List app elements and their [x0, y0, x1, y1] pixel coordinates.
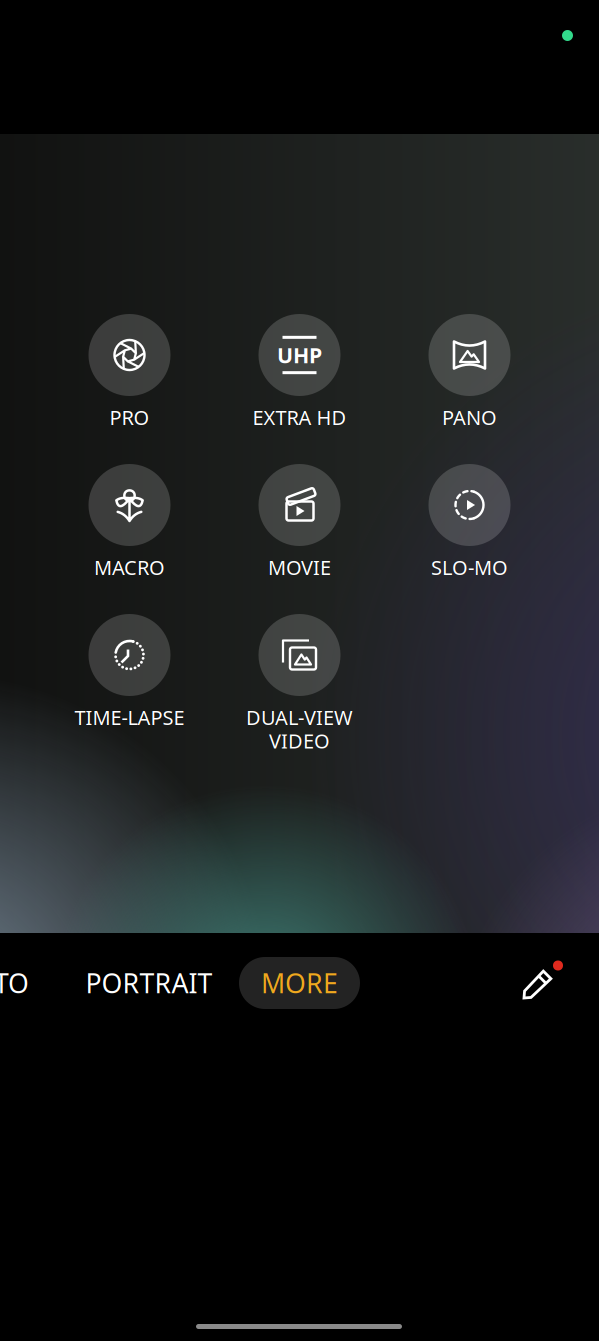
button[interactable]: PORTRAIT — [85, 955, 213, 1011]
staticText: MOVIE — [268, 554, 331, 581]
staticText: PANO — [442, 404, 497, 431]
staticText: MACRO — [94, 554, 165, 581]
button[interactable]: TO — [0, 955, 29, 1011]
staticText: MORE — [261, 965, 338, 1001]
button[interactable]: PANO — [384, 314, 554, 464]
staticText: VIDEO — [269, 728, 330, 754]
button[interactable]: TIME-LAPSE — [44, 614, 214, 764]
staticText: DUAL-VIEW — [246, 704, 353, 731]
button[interactable]: SLO-MO — [384, 464, 554, 614]
button[interactable]: Edit modes — [520, 957, 572, 1009]
staticText: EXTRA HD — [252, 404, 346, 431]
staticText: PRO — [109, 404, 149, 431]
button[interactable]: MOVIE — [214, 464, 384, 614]
staticText: PORTRAIT — [85, 965, 212, 1001]
staticText: TO — [0, 965, 29, 1001]
staticText: SLO-MO — [431, 554, 508, 581]
button[interactable]: MACRO — [44, 464, 214, 614]
button[interactable]: UHP — [214, 314, 384, 464]
staticText: TIME-LAPSE — [74, 704, 184, 731]
staticText: UHP — [277, 341, 322, 369]
button[interactable]: MORE — [239, 957, 360, 1009]
button[interactable]: DUAL-VIEW — [214, 614, 384, 764]
button[interactable]: PRO — [44, 314, 214, 464]
